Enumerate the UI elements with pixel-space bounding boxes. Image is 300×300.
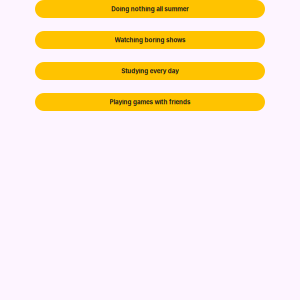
staticText: Playing games with friends bbox=[69, 95, 231, 109]
button[interactable]: Doing nothing all summer bbox=[35, 0, 265, 18]
button[interactable]: Watching boring shows bbox=[35, 31, 265, 49]
button[interactable]: Playing games with friends bbox=[35, 93, 265, 111]
button[interactable]: Studying every day bbox=[35, 62, 265, 80]
staticText: Doing nothing all summer bbox=[72, 2, 227, 16]
staticText: Studying every day bbox=[92, 64, 207, 78]
staticText: Watching boring shows bbox=[79, 33, 221, 47]
